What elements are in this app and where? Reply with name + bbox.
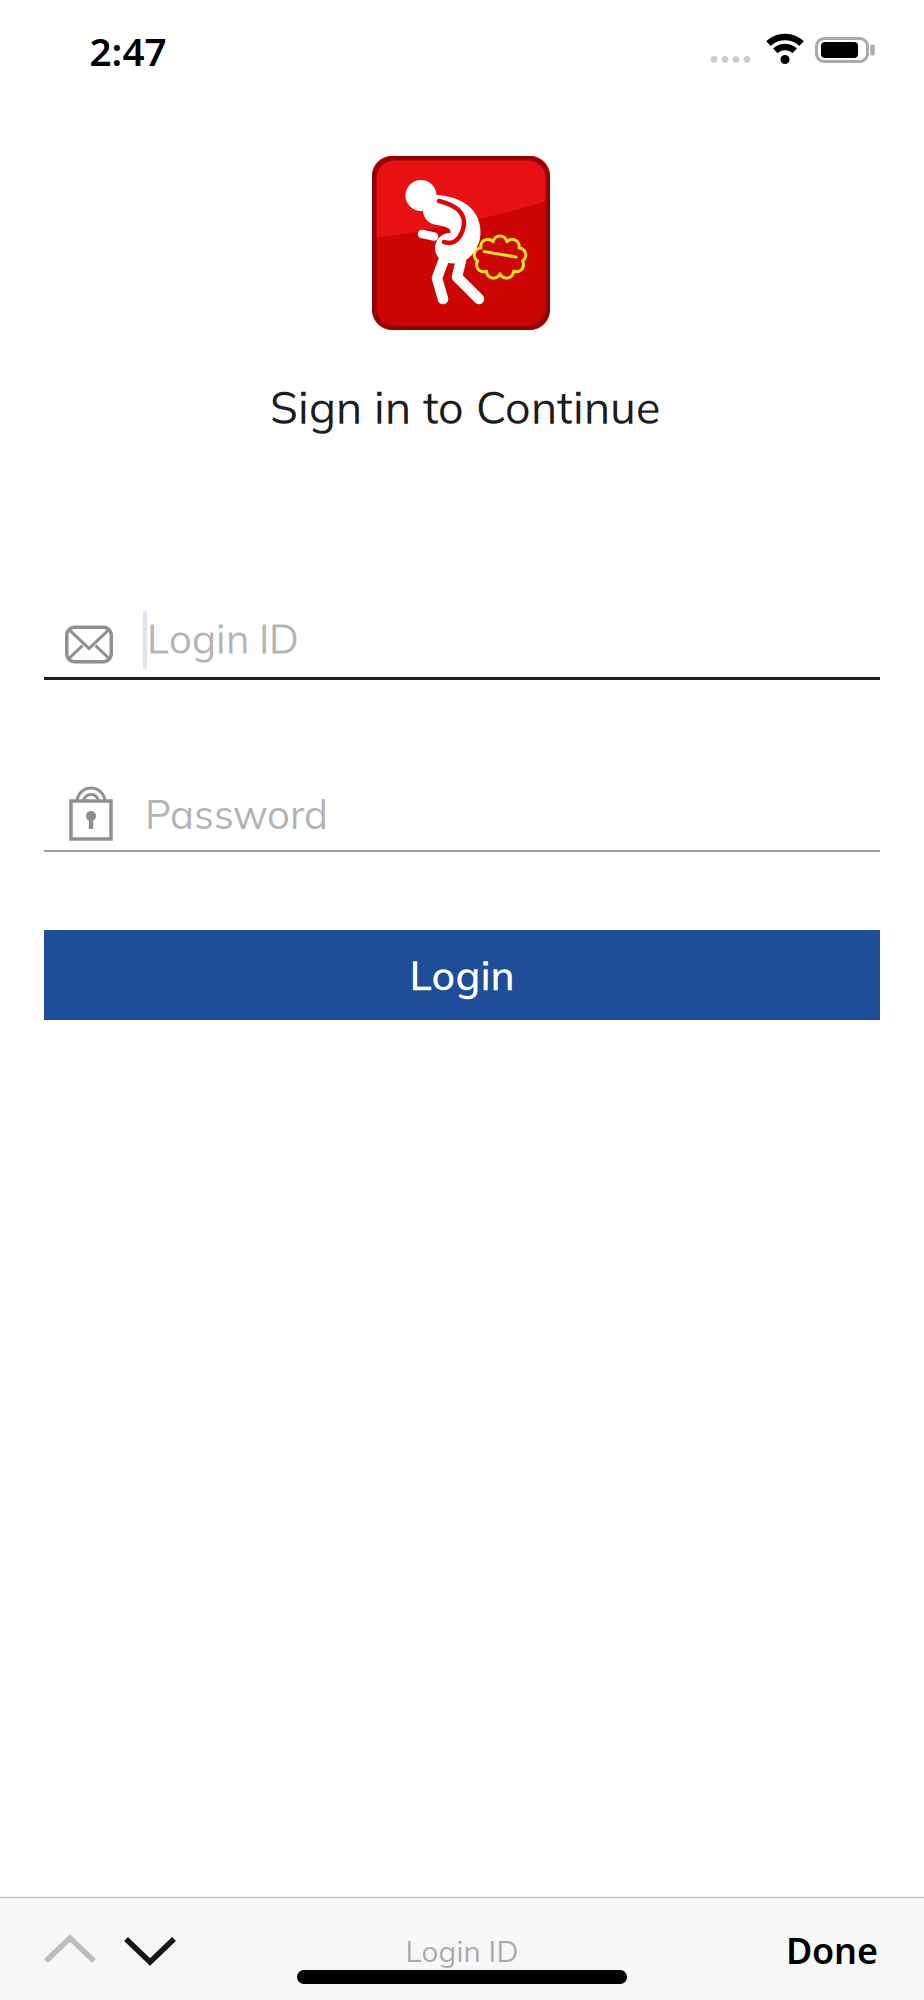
- button[interactable]: Done: [742, 1914, 922, 1986]
- staticText: Login ID: [405, 1933, 518, 1969]
- staticText: Done: [786, 1926, 878, 1974]
- button[interactable]: Next field: [115, 1920, 185, 1980]
- button[interactable]: Password: [44, 778, 880, 852]
- button[interactable]: Login ID: [44, 608, 880, 680]
- staticText: Login ID: [147, 613, 299, 664]
- staticText: Password: [145, 789, 328, 839]
- button[interactable]: Previous field: [35, 1920, 105, 1980]
- staticText: Login: [409, 949, 514, 1000]
- button[interactable]: Login: [44, 930, 880, 1020]
- staticText: 2:47: [89, 25, 166, 77]
- staticText: Sign in to Continue: [270, 379, 660, 435]
